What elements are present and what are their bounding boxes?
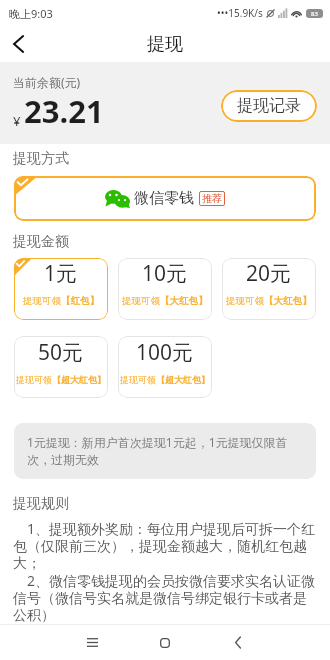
staticText: 推荐 [202, 192, 222, 205]
staticText: 83 [311, 10, 318, 18]
staticText: 20元 [246, 259, 292, 288]
staticText: 微信零钱 [134, 189, 194, 208]
staticText: 提现金额 [13, 233, 69, 251]
staticText: 提现可领 [120, 374, 156, 385]
button[interactable]: Back [218, 625, 258, 660]
button[interactable]: 20元 [222, 258, 316, 320]
staticText: 晚上9:03 [9, 6, 53, 21]
button[interactable]: 1元 [14, 258, 108, 320]
staticText: 提现可领 [23, 295, 61, 307]
staticText: 【超大红包】 [52, 374, 106, 385]
staticText: 1、提现额外奖励：每位用户提现后可拆一个红包（仅限前三次），提现金额越大，随机红… [13, 519, 317, 624]
staticText: 【红包】 [61, 295, 99, 307]
staticText: 提现 [147, 33, 183, 56]
staticText: 提现记录 [237, 96, 301, 116]
staticText: 提现规则 [13, 495, 69, 513]
staticText: ¥ [13, 112, 21, 130]
staticText: 100元 [136, 338, 194, 367]
button[interactable]: 10元 [118, 258, 212, 320]
staticText: 50元 [38, 338, 84, 367]
staticText: 提现方式 [13, 150, 69, 168]
staticText: 1元提现：新用户首次提现1元起，1元提现仅限首次，过期无效 [27, 434, 305, 468]
staticText: 提现可领 [226, 295, 264, 307]
staticText: 【大红包】 [264, 295, 312, 307]
button[interactable]: 微信零钱 [14, 176, 316, 221]
button[interactable]: Home [145, 625, 185, 660]
button[interactable]: 100元 [118, 336, 212, 398]
staticText: •••15.9K/s [217, 6, 263, 20]
staticText: 【超大红包】 [156, 374, 210, 385]
button[interactable]: Recents [72, 625, 112, 660]
staticText: 【大红包】 [160, 295, 208, 307]
staticText: 1元 [44, 259, 78, 288]
staticText: 提现可领 [16, 374, 52, 385]
staticText: 23.21 [24, 90, 104, 132]
staticText: 提现可领 [122, 295, 160, 307]
button[interactable]: 50元 [14, 336, 108, 398]
staticText: 10元 [142, 259, 188, 288]
staticText: 当前余额(元) [13, 74, 81, 90]
button[interactable]: Back [0, 26, 36, 62]
button[interactable]: 提现记录 [221, 90, 317, 122]
